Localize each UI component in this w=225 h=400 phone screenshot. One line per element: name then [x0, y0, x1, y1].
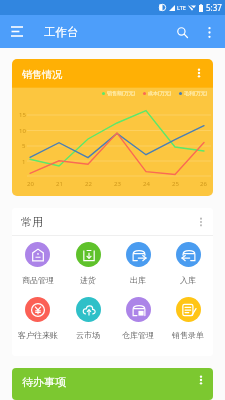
staticText: 26	[200, 180, 207, 188]
staticText: 云市场	[76, 330, 100, 340]
button[interactable]: Common options	[189, 210, 213, 234]
button[interactable]: Menu	[0, 15, 33, 48]
staticText: 商品管理	[22, 275, 54, 285]
staticText: 客户往来账	[18, 330, 58, 340]
button[interactable]: 出库	[113, 242, 163, 285]
staticText: 常用	[21, 215, 43, 229]
staticText: 21	[56, 180, 63, 188]
button[interactable]: 待办事项	[12, 368, 213, 400]
staticText: 25	[172, 180, 179, 188]
staticText: 24	[143, 180, 150, 188]
staticText: 待办事项	[22, 375, 66, 389]
button[interactable]: 入库	[163, 242, 213, 285]
staticText: 毛利(万元)	[184, 90, 208, 97]
staticText: 销售额(万元)	[107, 90, 136, 97]
staticText: 销售录单	[172, 330, 204, 340]
staticText: 5	[22, 142, 26, 150]
staticText: LTE	[177, 4, 186, 11]
staticText: 工作台	[44, 25, 79, 39]
button[interactable]: 销售情况	[12, 59, 213, 196]
button[interactable]: 销售录单	[163, 297, 213, 340]
staticText: 10	[19, 127, 26, 135]
staticText: 15	[19, 111, 26, 119]
staticText: 销售情况	[22, 68, 62, 81]
staticText: 成本(万元)	[148, 90, 172, 97]
button[interactable]: 客户往来账	[12, 297, 63, 340]
staticText: 出库	[130, 275, 146, 285]
staticText: 仓库管理	[122, 330, 154, 340]
button[interactable]: More options	[196, 19, 222, 45]
button[interactable]: 仓库管理	[113, 297, 163, 340]
staticText: 入库	[180, 275, 196, 285]
staticText: 1	[22, 158, 26, 166]
button[interactable]: 进货	[63, 242, 113, 285]
staticText: 23	[114, 180, 121, 188]
staticText: 22	[85, 180, 92, 188]
staticText: 5:37	[206, 2, 222, 13]
button[interactable]: 云市场	[63, 297, 113, 340]
button[interactable]: 商品管理	[12, 242, 63, 285]
button[interactable]: Search	[169, 19, 195, 45]
button[interactable]: Chart options	[187, 61, 211, 85]
button[interactable]: Todo options	[189, 368, 213, 392]
staticText: 进货	[80, 275, 96, 285]
staticText: 20	[27, 180, 34, 188]
